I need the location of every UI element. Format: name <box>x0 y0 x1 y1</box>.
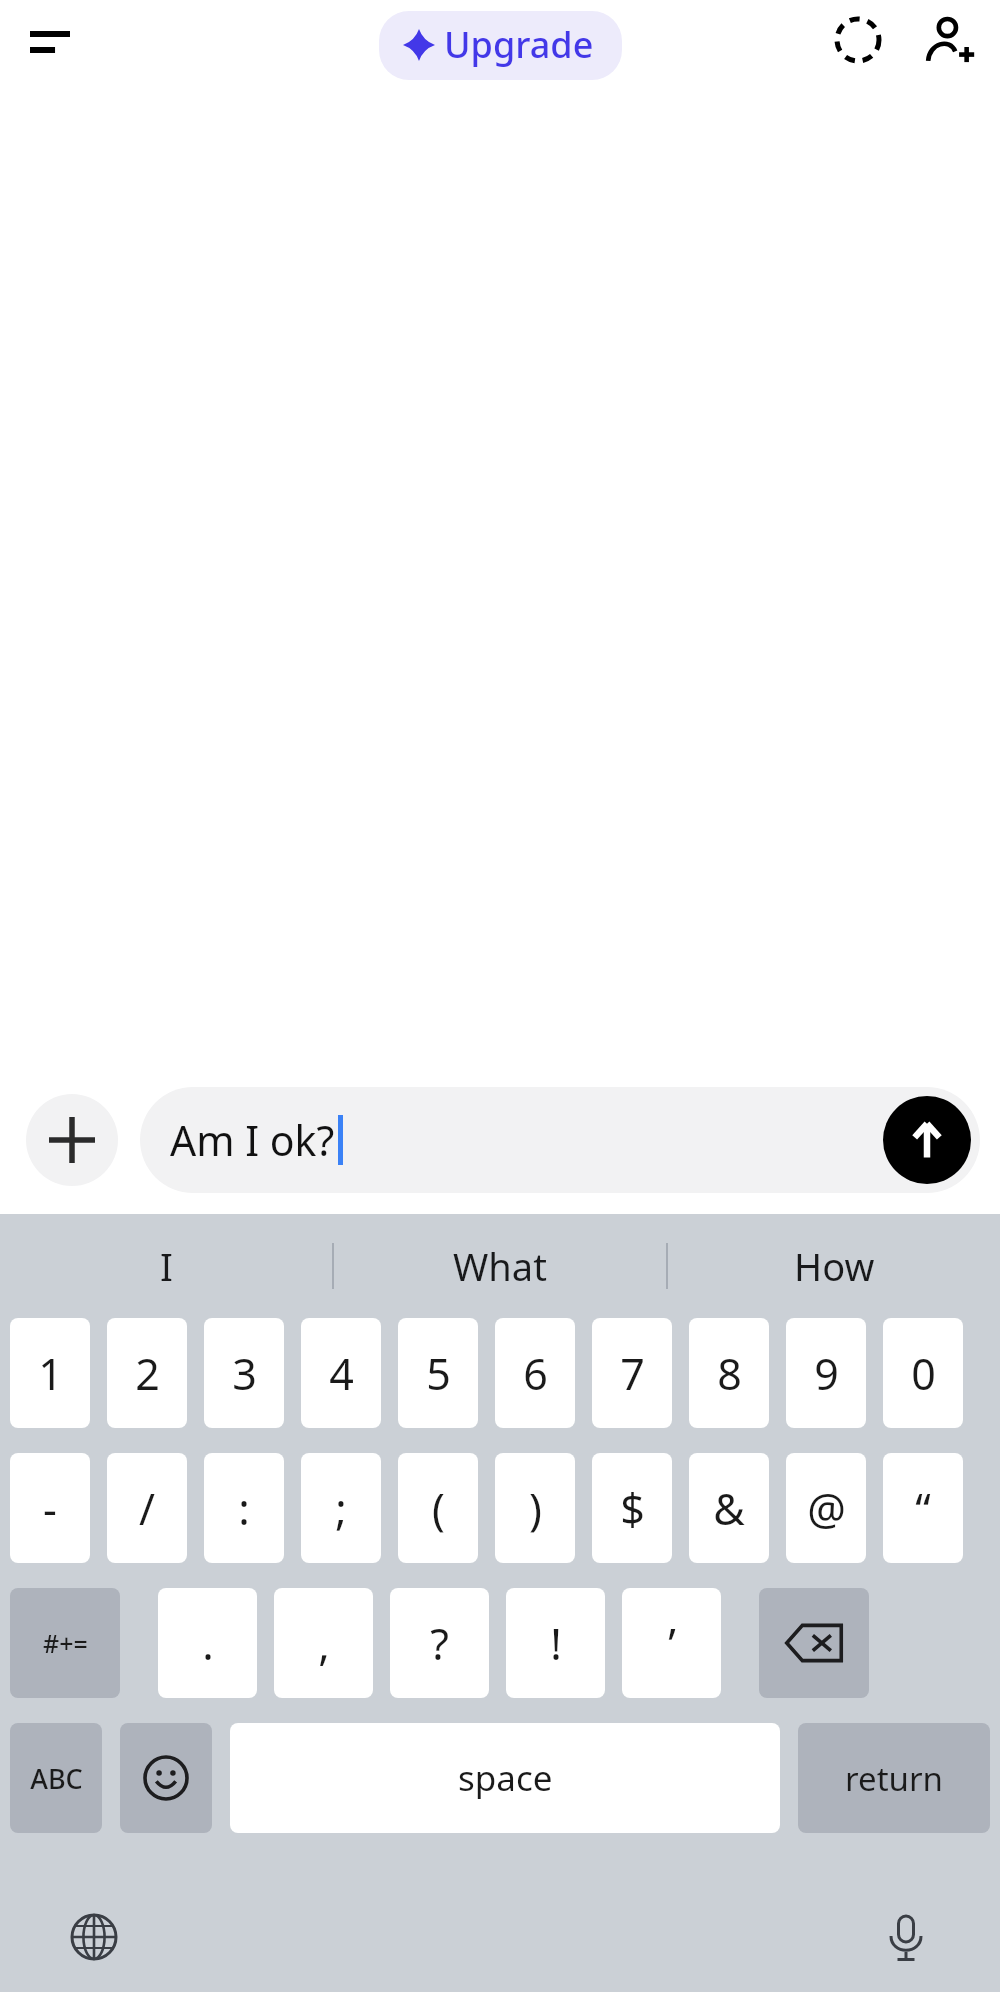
staticText: ABC <box>30 1760 83 1797</box>
button[interactable]: 2 <box>107 1318 187 1428</box>
button[interactable]: I <box>0 1214 332 1318</box>
button[interactable]: 7 <box>592 1318 672 1428</box>
staticText: space <box>458 1754 553 1802</box>
staticText: / <box>139 1479 155 1538</box>
button[interactable]: Am I ok? <box>140 1087 980 1193</box>
staticText: #+= <box>43 1626 88 1660</box>
button[interactable]: How <box>668 1214 1000 1318</box>
button[interactable]: 1 <box>10 1318 90 1428</box>
staticText: ( <box>432 1479 445 1538</box>
button[interactable]: 3 <box>204 1318 284 1428</box>
staticText: 8 <box>717 1344 742 1403</box>
staticText: ? <box>430 1614 449 1673</box>
button[interactable]: Voice input <box>870 1901 942 1973</box>
button[interactable]: . <box>158 1588 257 1698</box>
button[interactable]: ? <box>390 1588 489 1698</box>
button[interactable]: , <box>274 1588 373 1698</box>
button[interactable]: History <box>820 2 896 78</box>
staticText: , <box>318 1614 330 1673</box>
button[interactable]: ! <box>506 1588 605 1698</box>
button[interactable]: Add person <box>912 2 988 78</box>
button[interactable]: Add attachment <box>26 1094 118 1186</box>
staticText: 4 <box>329 1344 354 1403</box>
button[interactable]: 4 <box>301 1318 381 1428</box>
button[interactable]: - <box>10 1453 90 1563</box>
staticText: 0 <box>911 1344 936 1403</box>
staticText: 5 <box>426 1344 451 1403</box>
button[interactable]: @ <box>786 1453 866 1563</box>
staticText: What <box>453 1240 547 1292</box>
staticText: return <box>845 1756 943 1801</box>
staticText: 7 <box>620 1344 645 1403</box>
button[interactable]: : <box>204 1453 284 1563</box>
button[interactable]: ( <box>398 1453 478 1563</box>
button[interactable]: What <box>334 1214 666 1318</box>
button[interactable]: 9 <box>786 1318 866 1428</box>
staticText: 1 <box>38 1344 63 1403</box>
button[interactable]: & <box>689 1453 769 1563</box>
staticText: ; <box>335 1479 347 1538</box>
button[interactable]: #+= <box>10 1588 120 1698</box>
staticText: 9 <box>814 1344 839 1403</box>
button[interactable]: Backspace <box>759 1588 869 1698</box>
staticText: @ <box>807 1479 846 1538</box>
button[interactable]: ABC <box>10 1723 102 1833</box>
button[interactable]: Send <box>883 1096 971 1184</box>
staticText: - <box>43 1479 57 1538</box>
staticText: 6 <box>523 1344 548 1403</box>
staticText: Upgrade <box>444 20 594 69</box>
button[interactable]: space <box>230 1723 780 1833</box>
button[interactable]: ’ <box>622 1588 721 1698</box>
button[interactable]: 8 <box>689 1318 769 1428</box>
button[interactable]: 0 <box>883 1318 963 1428</box>
button[interactable]: $ <box>592 1453 672 1563</box>
button[interactable]: Menu <box>12 3 88 79</box>
button[interactable]: Upgrade <box>379 11 622 80</box>
button[interactable]: / <box>107 1453 187 1563</box>
staticText: $ <box>620 1479 645 1538</box>
staticText: ! <box>550 1614 562 1673</box>
staticText: How <box>794 1240 875 1292</box>
staticText: & <box>713 1479 745 1538</box>
staticText: I <box>160 1240 173 1292</box>
staticText: 3 <box>232 1344 257 1403</box>
button[interactable]: “ <box>883 1453 963 1563</box>
staticText: “ <box>915 1479 931 1538</box>
button[interactable]: ) <box>495 1453 575 1563</box>
button[interactable]: Change keyboard language <box>58 1901 130 1973</box>
staticText: Am I ok? <box>170 1112 335 1168</box>
staticText: : <box>238 1479 250 1538</box>
staticText: 2 <box>135 1344 160 1403</box>
staticText: ’ <box>668 1614 676 1673</box>
button[interactable]: ; <box>301 1453 381 1563</box>
button[interactable]: 5 <box>398 1318 478 1428</box>
staticText: . <box>202 1614 214 1673</box>
staticText: ) <box>529 1479 542 1538</box>
button[interactable]: return <box>798 1723 990 1833</box>
button[interactable]: Emoji <box>120 1723 212 1833</box>
button[interactable]: 6 <box>495 1318 575 1428</box>
